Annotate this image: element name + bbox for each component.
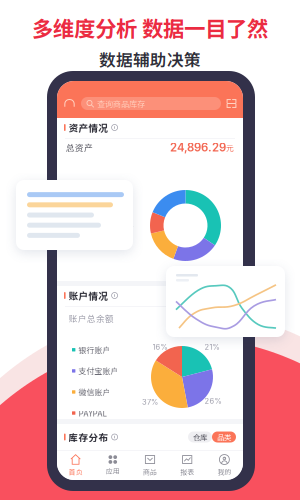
- staticText: 多维度分析 数据一目了然: [32, 12, 268, 43]
- staticText: 37%: [142, 397, 158, 406]
- button[interactable]: 客服: [63, 97, 76, 110]
- staticText: 21%: [204, 342, 219, 351]
- staticText: 账户余额: [74, 204, 106, 216]
- staticText: 12,000.00元: [72, 218, 134, 231]
- staticText: 2,880.00元: [72, 304, 130, 317]
- staticText: PAYPAL: [78, 407, 106, 419]
- staticText: 查询商品库存: [97, 98, 145, 109]
- staticText: 支付宝账户: [78, 365, 118, 377]
- staticText: 应用: [106, 466, 120, 476]
- staticText: 品类: [217, 432, 231, 442]
- staticText: 账户情况: [69, 288, 109, 302]
- button[interactable]: 我的: [206, 452, 243, 478]
- button[interactable]: 品类: [212, 431, 236, 442]
- staticText: 16%: [152, 342, 167, 351]
- button[interactable]: 应用: [94, 452, 131, 478]
- staticText: 数据辅助决策: [99, 47, 201, 71]
- button[interactable]: 商品: [131, 452, 169, 478]
- staticText: 银行账户: [78, 344, 110, 356]
- button[interactable]: 首页: [57, 452, 94, 478]
- staticText: 库存分布: [69, 430, 109, 444]
- staticText: 商品: [143, 466, 157, 476]
- staticText: 26%: [204, 396, 221, 405]
- staticText: 仓库: [193, 432, 207, 442]
- staticText: 微信账户: [78, 386, 110, 398]
- staticText: 资产情况: [69, 120, 109, 134]
- button[interactable]: 报表: [169, 452, 206, 478]
- staticText: 应付账款: [74, 290, 106, 302]
- staticText: 24,896.29: [170, 141, 226, 154]
- staticText: 总资产: [66, 141, 93, 154]
- button[interactable]: 仓库: [188, 431, 212, 442]
- staticText: 账户总余额: [69, 312, 114, 324]
- button[interactable]: 扫一扫: [226, 98, 237, 109]
- staticText: 首页: [69, 466, 83, 476]
- staticText: 报表: [180, 466, 194, 476]
- staticText: 元: [226, 142, 234, 153]
- staticText: 我的: [217, 466, 231, 476]
